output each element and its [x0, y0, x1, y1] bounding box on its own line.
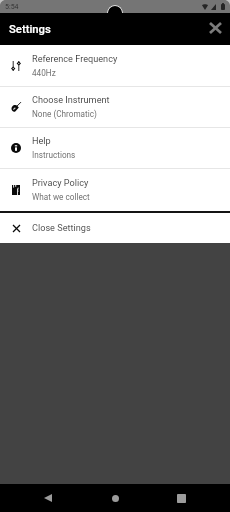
staticText: Help — [32, 136, 51, 147]
staticText: Privacy Policy — [32, 178, 89, 189]
staticText: Instructions — [32, 150, 76, 160]
staticText: Choose Instrument — [32, 95, 110, 106]
button[interactable]: Home — [103, 486, 127, 510]
button[interactable]: Close Settings — [0, 213, 230, 243]
staticText: Reference Frequency — [32, 54, 118, 65]
staticText: What we collect — [32, 192, 90, 202]
button[interactable]: Help — [0, 128, 230, 168]
button[interactable]: Close settings — [202, 15, 228, 41]
button[interactable]: Back — [36, 486, 60, 510]
staticText: 5:54 — [5, 3, 19, 11]
button[interactable]: Reference Frequency — [0, 45, 230, 86]
staticText: None (Chromatic) — [32, 109, 97, 119]
staticText: Close Settings — [32, 223, 91, 234]
button[interactable]: Recent apps — [169, 486, 193, 510]
staticText: 440Hz — [32, 68, 56, 78]
button[interactable]: Privacy Policy — [0, 169, 230, 211]
button[interactable]: Choose Instrument — [0, 87, 230, 127]
staticText: Settings — [9, 23, 51, 36]
